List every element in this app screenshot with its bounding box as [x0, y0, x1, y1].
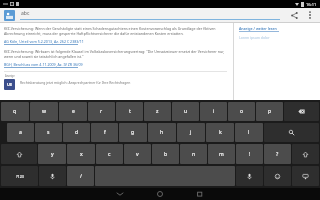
button[interactable]: More options [304, 9, 316, 21]
button[interactable]: o [228, 102, 255, 121]
button[interactable]: AG Köln, Urteil vom 5.2.2013, Az. 262 C … [4, 39, 84, 45]
button[interactable]: Hide keyboard [107, 188, 133, 200]
staticText: z [156, 108, 159, 115]
staticText: v [136, 151, 139, 158]
button[interactable]: u [172, 102, 199, 121]
staticText: AG Köln, Urteil vom 5.2.2013, Az. 262 C … [4, 39, 84, 44]
staticText: Lorem ipsum dolor [239, 35, 270, 40]
button[interactable]: p [256, 102, 283, 121]
button[interactable]: Home [147, 188, 173, 200]
staticText: Rechtsberatung jetzt möglich: Ansprechpa… [20, 80, 131, 85]
button[interactable]: Voice input [39, 166, 66, 186]
button[interactable]: r [88, 102, 115, 121]
staticText: o [240, 108, 244, 115]
button[interactable]: b [152, 144, 179, 164]
staticText: u [184, 108, 188, 115]
button[interactable]: x [67, 144, 95, 164]
staticText: KfZ-Versicherung: Wenn der Geschädigte s… [4, 26, 227, 36]
button[interactable]: Anzeige [4, 74, 227, 90]
button[interactable]: Backspace [284, 102, 319, 121]
button[interactable]: Hide keyboard [292, 166, 319, 186]
button[interactable]: g [119, 123, 147, 142]
button[interactable]: ? [264, 144, 291, 164]
staticText: l [248, 129, 250, 136]
staticText: r [100, 108, 103, 115]
button[interactable]: q [1, 102, 29, 121]
staticText: k [219, 129, 222, 136]
button[interactable]: s [35, 123, 62, 142]
staticText: BGH, Beschluss vom 4.11.2009, Az. IV ZR … [4, 62, 83, 67]
button[interactable]: l [235, 123, 263, 142]
staticText: y [51, 151, 54, 158]
staticText: j [190, 129, 192, 136]
staticText: q [13, 108, 17, 115]
button[interactable]: f [91, 123, 118, 142]
button[interactable]: ?123 [1, 166, 38, 186]
button[interactable]: Voice input [236, 166, 263, 186]
staticText: c [108, 151, 111, 158]
button[interactable]: abc [20, 10, 280, 20]
button[interactable]: j [177, 123, 205, 142]
button[interactable]: t [116, 102, 143, 121]
staticText: i [213, 108, 215, 115]
staticText: 16:11 [306, 2, 317, 7]
button[interactable]: i [200, 102, 227, 121]
staticText: UE [7, 82, 13, 87]
button[interactable]: Anzeige / weiter lesen [239, 26, 279, 32]
button[interactable]: y [38, 144, 66, 164]
button[interactable]: d [63, 123, 90, 142]
button[interactable]: Shift [1, 144, 37, 164]
staticText: s [47, 129, 50, 136]
staticText: h [160, 129, 164, 136]
button[interactable]: n [180, 144, 207, 164]
button[interactable]: Shift [292, 144, 319, 164]
button[interactable]: z [144, 102, 171, 121]
button[interactable]: h [148, 123, 176, 142]
button[interactable]: e [59, 102, 87, 121]
button[interactable]: BGH, Beschluss vom 4.11.2009, Az. IV ZR … [4, 62, 83, 68]
staticText: f [104, 129, 106, 136]
button[interactable]: c [96, 144, 123, 164]
staticText: Anzeige / weiter lesen [239, 26, 277, 31]
staticText: e [72, 108, 75, 115]
staticText: / [80, 173, 82, 180]
staticText: m [219, 151, 224, 158]
staticText: abc [21, 10, 30, 17]
button[interactable]: Emoji [264, 166, 291, 186]
button[interactable]: Search [264, 123, 319, 142]
staticText: ! [249, 151, 251, 158]
staticText: ?123 [16, 174, 24, 179]
staticText: a [19, 129, 22, 136]
button[interactable]: Share [288, 9, 301, 22]
button[interactable]: a [7, 123, 34, 142]
staticText: n [192, 151, 196, 158]
button[interactable]: m [208, 144, 235, 164]
staticText: w [42, 108, 47, 115]
button[interactable]: Recent apps [187, 188, 213, 200]
staticText: Anzeige [5, 74, 15, 78]
staticText: g [131, 129, 135, 136]
button[interactable]: ! [236, 144, 263, 164]
staticText: ? [276, 151, 279, 158]
staticText: b [164, 151, 168, 158]
button[interactable]: App icon [4, 10, 15, 21]
button[interactable]: v [124, 144, 151, 164]
staticText: p [268, 108, 272, 115]
staticText: x [80, 151, 83, 158]
button[interactable]: k [206, 123, 234, 142]
button[interactable]: / [67, 166, 94, 186]
staticText: KfZ-Versicherung: Wirksam ist folgende K… [4, 49, 227, 59]
staticText: d [75, 129, 79, 136]
staticText: t [129, 108, 131, 115]
button[interactable]: w [30, 102, 58, 121]
